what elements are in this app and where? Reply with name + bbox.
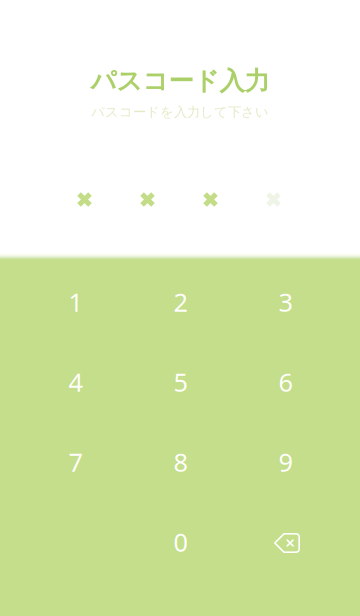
button[interactable]: 2	[128, 262, 233, 342]
button[interactable]: 6	[233, 342, 338, 422]
staticText: 7	[68, 445, 82, 479]
button[interactable]: 8	[128, 422, 233, 502]
staticText: パスコードを入力して下さい	[91, 104, 269, 120]
staticText: 6	[278, 365, 292, 399]
staticText: 0	[173, 525, 187, 559]
staticText: 8	[173, 445, 187, 479]
staticText: 3	[278, 285, 292, 319]
staticText: 9	[278, 445, 292, 479]
button[interactable]: 4	[23, 342, 128, 422]
staticText: 5	[173, 365, 187, 399]
button[interactable]: 1	[23, 262, 128, 342]
button[interactable]: Delete	[233, 502, 338, 582]
staticText: 4	[68, 365, 82, 399]
staticText: パスコード入力	[90, 65, 269, 96]
button[interactable]: 3	[233, 262, 338, 342]
button[interactable]: 0	[128, 502, 233, 582]
button[interactable]: 9	[233, 422, 338, 502]
staticText: 2	[173, 285, 187, 319]
button[interactable]: 5	[128, 342, 233, 422]
staticText: 1	[68, 285, 82, 319]
button[interactable]: 7	[23, 422, 128, 502]
